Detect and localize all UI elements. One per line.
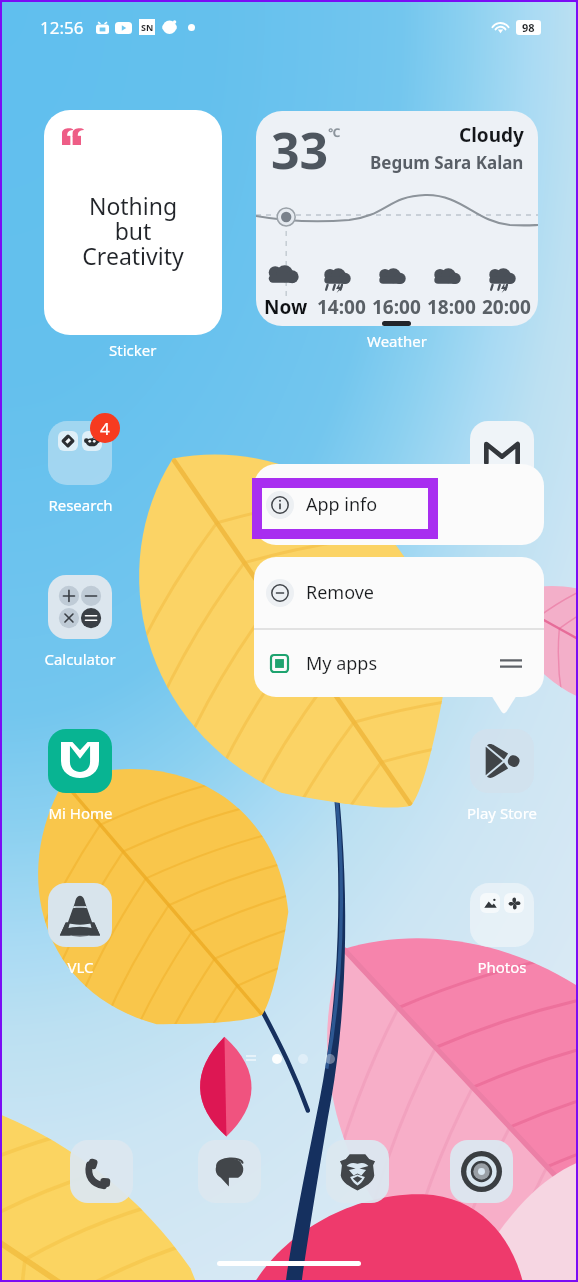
button[interactable]: Brave Browser bbox=[326, 1140, 389, 1203]
staticText: ℃ bbox=[328, 124, 341, 140]
staticText: 16:00 bbox=[372, 294, 421, 320]
staticText: My apps bbox=[306, 651, 378, 676]
button[interactable]: Messages bbox=[198, 1140, 261, 1203]
staticText: Research bbox=[48, 495, 113, 515]
button[interactable]: Nothing but Creativity bbox=[44, 110, 222, 335]
button[interactable]: VLC bbox=[30, 883, 130, 977]
staticText: App info bbox=[306, 492, 378, 517]
button[interactable]: All apps bbox=[246, 1053, 256, 1063]
staticText: App info bbox=[306, 492, 378, 517]
staticText: Weather bbox=[367, 331, 427, 351]
staticText: SN bbox=[141, 21, 154, 33]
staticText: Nothing but Creativity bbox=[82, 190, 184, 271]
button[interactable]: Research bbox=[30, 421, 130, 515]
staticText: 18:00 bbox=[427, 294, 476, 320]
button[interactable]: App info bbox=[254, 464, 544, 545]
staticText: Mi Home bbox=[48, 803, 113, 823]
staticText: Photos bbox=[477, 957, 527, 977]
button[interactable]: Photos bbox=[452, 883, 552, 977]
staticText: Remove bbox=[306, 580, 375, 605]
button[interactable]: Mi Home bbox=[30, 729, 130, 823]
button[interactable]: Play Store bbox=[452, 729, 552, 823]
button[interactable]: Phone bbox=[70, 1140, 133, 1203]
button[interactable]: 33 bbox=[256, 111, 538, 326]
staticText: Calculator bbox=[44, 649, 116, 669]
button[interactable]: Calculator bbox=[30, 575, 130, 669]
staticText: 14:00 bbox=[317, 294, 366, 320]
staticText: : bbox=[537, 291, 538, 318]
staticText: Play Store bbox=[467, 803, 537, 823]
staticText: 33 bbox=[271, 116, 329, 184]
button[interactable]: My apps bbox=[254, 630, 544, 697]
staticText: VLC bbox=[67, 957, 94, 977]
button[interactable]: Remove bbox=[254, 557, 544, 628]
staticText: 4 bbox=[100, 417, 110, 440]
staticText: Cloudy bbox=[459, 122, 524, 148]
staticText: Begum Sara Kalan bbox=[370, 151, 524, 174]
button[interactable]: Camera bbox=[450, 1140, 513, 1203]
button[interactable]: Gmail bbox=[452, 421, 552, 515]
staticText: 98 bbox=[522, 20, 535, 35]
staticText: 20:00 bbox=[482, 294, 531, 320]
staticText: Sticker bbox=[109, 340, 157, 360]
staticText: 12:56 bbox=[40, 16, 84, 39]
staticText: Now bbox=[264, 294, 308, 320]
